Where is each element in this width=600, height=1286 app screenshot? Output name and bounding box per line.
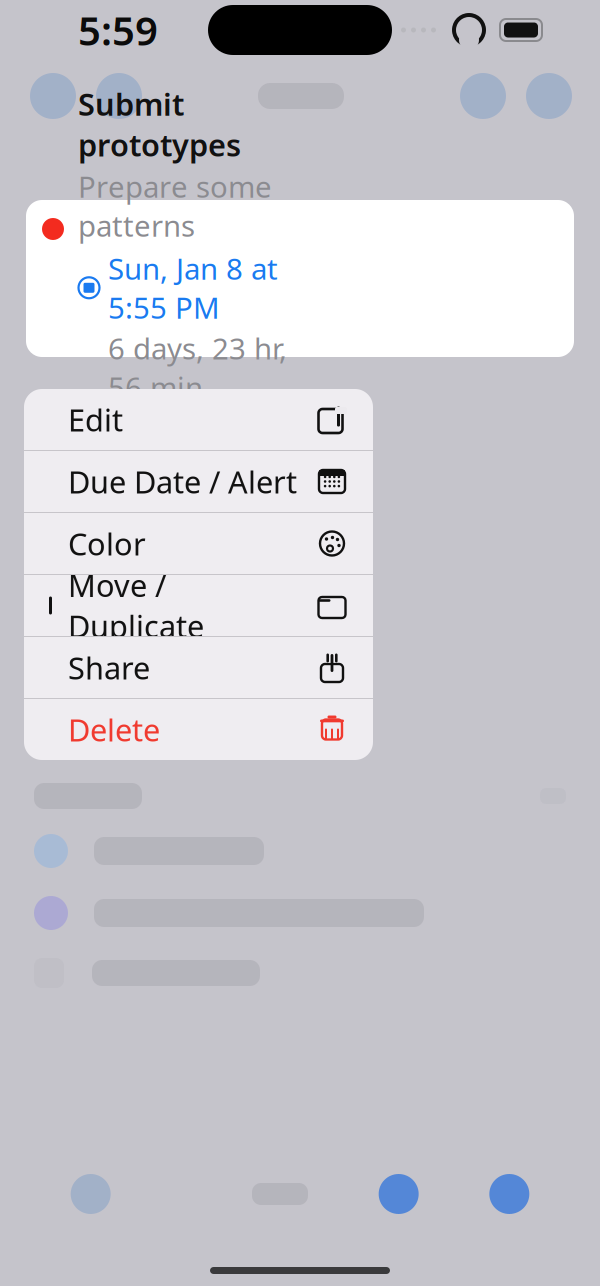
staticText: Due Date / Alert xyxy=(68,461,297,502)
staticText: Move / Duplicate xyxy=(68,565,204,646)
staticText: 6 days, 23 hr, 56 min remaining xyxy=(108,329,287,446)
staticText: 5:59 xyxy=(78,3,158,56)
staticText: Due Date xyxy=(108,449,237,488)
staticText: Share xyxy=(68,647,150,688)
button[interactable]: Edit xyxy=(24,389,373,450)
staticText: Prepare some patterns xyxy=(78,167,272,245)
button[interactable]: Color xyxy=(24,513,373,574)
button[interactable]: Share xyxy=(24,637,373,698)
button[interactable]: Move / Duplicate xyxy=(24,575,373,636)
staticText: Delete xyxy=(68,709,160,750)
staticText: Edit xyxy=(68,399,123,440)
staticText: Submit prototypes xyxy=(78,83,241,165)
button[interactable]: Due Date / Alert xyxy=(24,451,373,512)
staticText: Color xyxy=(68,523,146,564)
staticText: Sun, Jan 8 at 5:55 PM xyxy=(108,249,278,327)
button[interactable]: Delete xyxy=(24,699,373,760)
